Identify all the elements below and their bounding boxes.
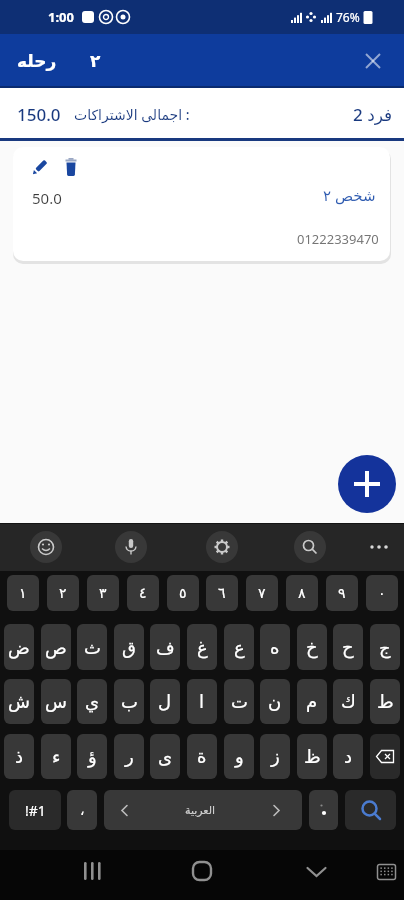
staticText: !#1 bbox=[25, 801, 46, 820]
button[interactable]: ٩ bbox=[326, 575, 358, 611]
button[interactable]: ج bbox=[370, 624, 400, 670]
staticText: رحله bbox=[17, 51, 57, 71]
button[interactable] bbox=[300, 853, 332, 897]
button[interactable]: ٦ bbox=[206, 575, 238, 611]
button[interactable]: ذ bbox=[4, 734, 34, 779]
button[interactable]: د bbox=[333, 734, 363, 779]
staticText: ١ bbox=[19, 585, 27, 601]
button[interactable]: ٢ bbox=[47, 575, 79, 611]
button[interactable]: ق bbox=[114, 624, 144, 670]
button[interactable]: ر bbox=[114, 734, 144, 779]
staticText: ن bbox=[268, 691, 282, 712]
button[interactable]: ٣ bbox=[87, 575, 119, 611]
button[interactable]: ٤ bbox=[127, 575, 159, 611]
button[interactable]: م bbox=[297, 679, 327, 724]
button[interactable]: ث bbox=[77, 624, 107, 670]
staticText: العربية bbox=[185, 804, 216, 817]
staticText: ث bbox=[84, 637, 101, 658]
button[interactable] bbox=[206, 531, 238, 563]
staticText: ي bbox=[85, 691, 100, 712]
button[interactable]: ل bbox=[150, 679, 180, 724]
staticText: ح bbox=[342, 637, 354, 658]
button[interactable]: ٧ bbox=[246, 575, 278, 611]
staticText: ٣ bbox=[99, 585, 107, 601]
button[interactable]: ش bbox=[4, 679, 34, 724]
staticText: 1:00 bbox=[48, 8, 74, 26]
staticText: ب bbox=[121, 691, 138, 712]
staticText: 150.0 bbox=[17, 103, 61, 126]
staticText: ا bbox=[199, 691, 205, 712]
button[interactable]: ه bbox=[260, 624, 290, 670]
button[interactable] bbox=[115, 531, 147, 563]
button[interactable] bbox=[294, 531, 326, 563]
staticText: ر bbox=[125, 746, 134, 767]
button[interactable]: شخص ٢ bbox=[13, 147, 390, 261]
staticText: و bbox=[235, 746, 244, 767]
button[interactable] bbox=[370, 853, 402, 897]
staticText: ط bbox=[377, 691, 394, 712]
staticText: فرد 2 bbox=[353, 103, 393, 126]
button[interactable]: ٥ bbox=[167, 575, 199, 611]
staticText: ٠ bbox=[378, 585, 386, 601]
staticText: ٨ bbox=[298, 585, 306, 601]
button[interactable]: ء bbox=[41, 734, 71, 779]
staticText: ى bbox=[158, 746, 173, 767]
button[interactable]: ظ bbox=[297, 734, 327, 779]
staticText: ك bbox=[341, 691, 356, 712]
staticText: ه bbox=[270, 637, 280, 658]
staticText: ٢ bbox=[59, 585, 67, 601]
button[interactable]: ن bbox=[260, 679, 290, 724]
button[interactable]: ب bbox=[114, 679, 144, 724]
button[interactable]: ة bbox=[187, 734, 217, 779]
button[interactable] bbox=[360, 48, 386, 74]
staticText: ت bbox=[231, 691, 248, 712]
button[interactable]: ؤ bbox=[77, 734, 107, 779]
button[interactable]: ١ bbox=[7, 575, 39, 611]
staticText: ز bbox=[271, 746, 280, 767]
button[interactable]: العربية bbox=[104, 790, 302, 830]
staticText: ع bbox=[234, 637, 245, 658]
button[interactable] bbox=[338, 455, 396, 513]
staticText: ؤ bbox=[88, 746, 97, 767]
button[interactable]: و bbox=[224, 734, 254, 779]
staticText: ذ bbox=[15, 746, 24, 767]
staticText: غ bbox=[197, 637, 208, 658]
button[interactable] bbox=[309, 790, 338, 830]
button[interactable]: ط bbox=[370, 679, 400, 724]
staticText: ء bbox=[52, 746, 61, 767]
button[interactable]: ض bbox=[4, 624, 34, 670]
staticText: 76% bbox=[336, 9, 360, 25]
button[interactable]: غ bbox=[187, 624, 217, 670]
button[interactable]: ص bbox=[41, 624, 71, 670]
button[interactable]: س bbox=[41, 679, 71, 724]
button[interactable]: ٠ bbox=[366, 575, 398, 611]
button[interactable]: ك bbox=[333, 679, 363, 724]
button[interactable]: ح bbox=[333, 624, 363, 670]
staticText: ل bbox=[158, 691, 172, 712]
button[interactable]: ى bbox=[150, 734, 180, 779]
button[interactable]: خ bbox=[297, 624, 327, 670]
staticText: ق bbox=[122, 637, 136, 658]
button[interactable] bbox=[345, 790, 396, 830]
staticText: ، bbox=[80, 802, 85, 818]
staticText: اجمالى الاشتراكات : bbox=[74, 105, 190, 124]
button[interactable] bbox=[30, 531, 62, 563]
button[interactable]: ع bbox=[224, 624, 254, 670]
button[interactable]: ، bbox=[67, 790, 97, 830]
button[interactable]: ي bbox=[77, 679, 107, 724]
staticText: ض bbox=[8, 637, 30, 658]
staticText: ف bbox=[156, 637, 175, 658]
button[interactable]: ا bbox=[187, 679, 217, 724]
button[interactable] bbox=[186, 853, 218, 897]
button[interactable] bbox=[370, 734, 400, 779]
staticText: ة bbox=[197, 746, 207, 767]
button[interactable]: ت bbox=[224, 679, 254, 724]
staticText: ٧ bbox=[258, 585, 266, 601]
button[interactable]: !#1 bbox=[9, 790, 61, 830]
staticText: ٩ bbox=[338, 585, 346, 601]
button[interactable]: ف bbox=[150, 624, 180, 670]
button[interactable]: ز bbox=[260, 734, 290, 779]
staticText: ٤ bbox=[139, 585, 147, 601]
button[interactable] bbox=[76, 853, 108, 897]
button[interactable]: ٨ bbox=[286, 575, 318, 611]
